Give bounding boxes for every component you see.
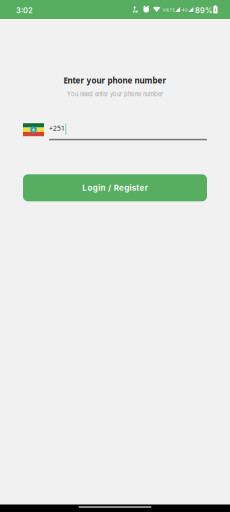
staticText: +251 <box>49 124 65 133</box>
button[interactable]: Login / Register <box>23 174 207 201</box>
staticText: 3:02 <box>16 6 33 15</box>
staticText: Enter your phone number <box>63 75 166 86</box>
staticText: Login / Register <box>82 183 148 193</box>
staticText: 4G <box>182 8 188 12</box>
staticText: 89% <box>195 6 212 15</box>
staticText: VoLTE <box>162 8 174 12</box>
staticText: You need enter your phone number <box>67 91 163 98</box>
